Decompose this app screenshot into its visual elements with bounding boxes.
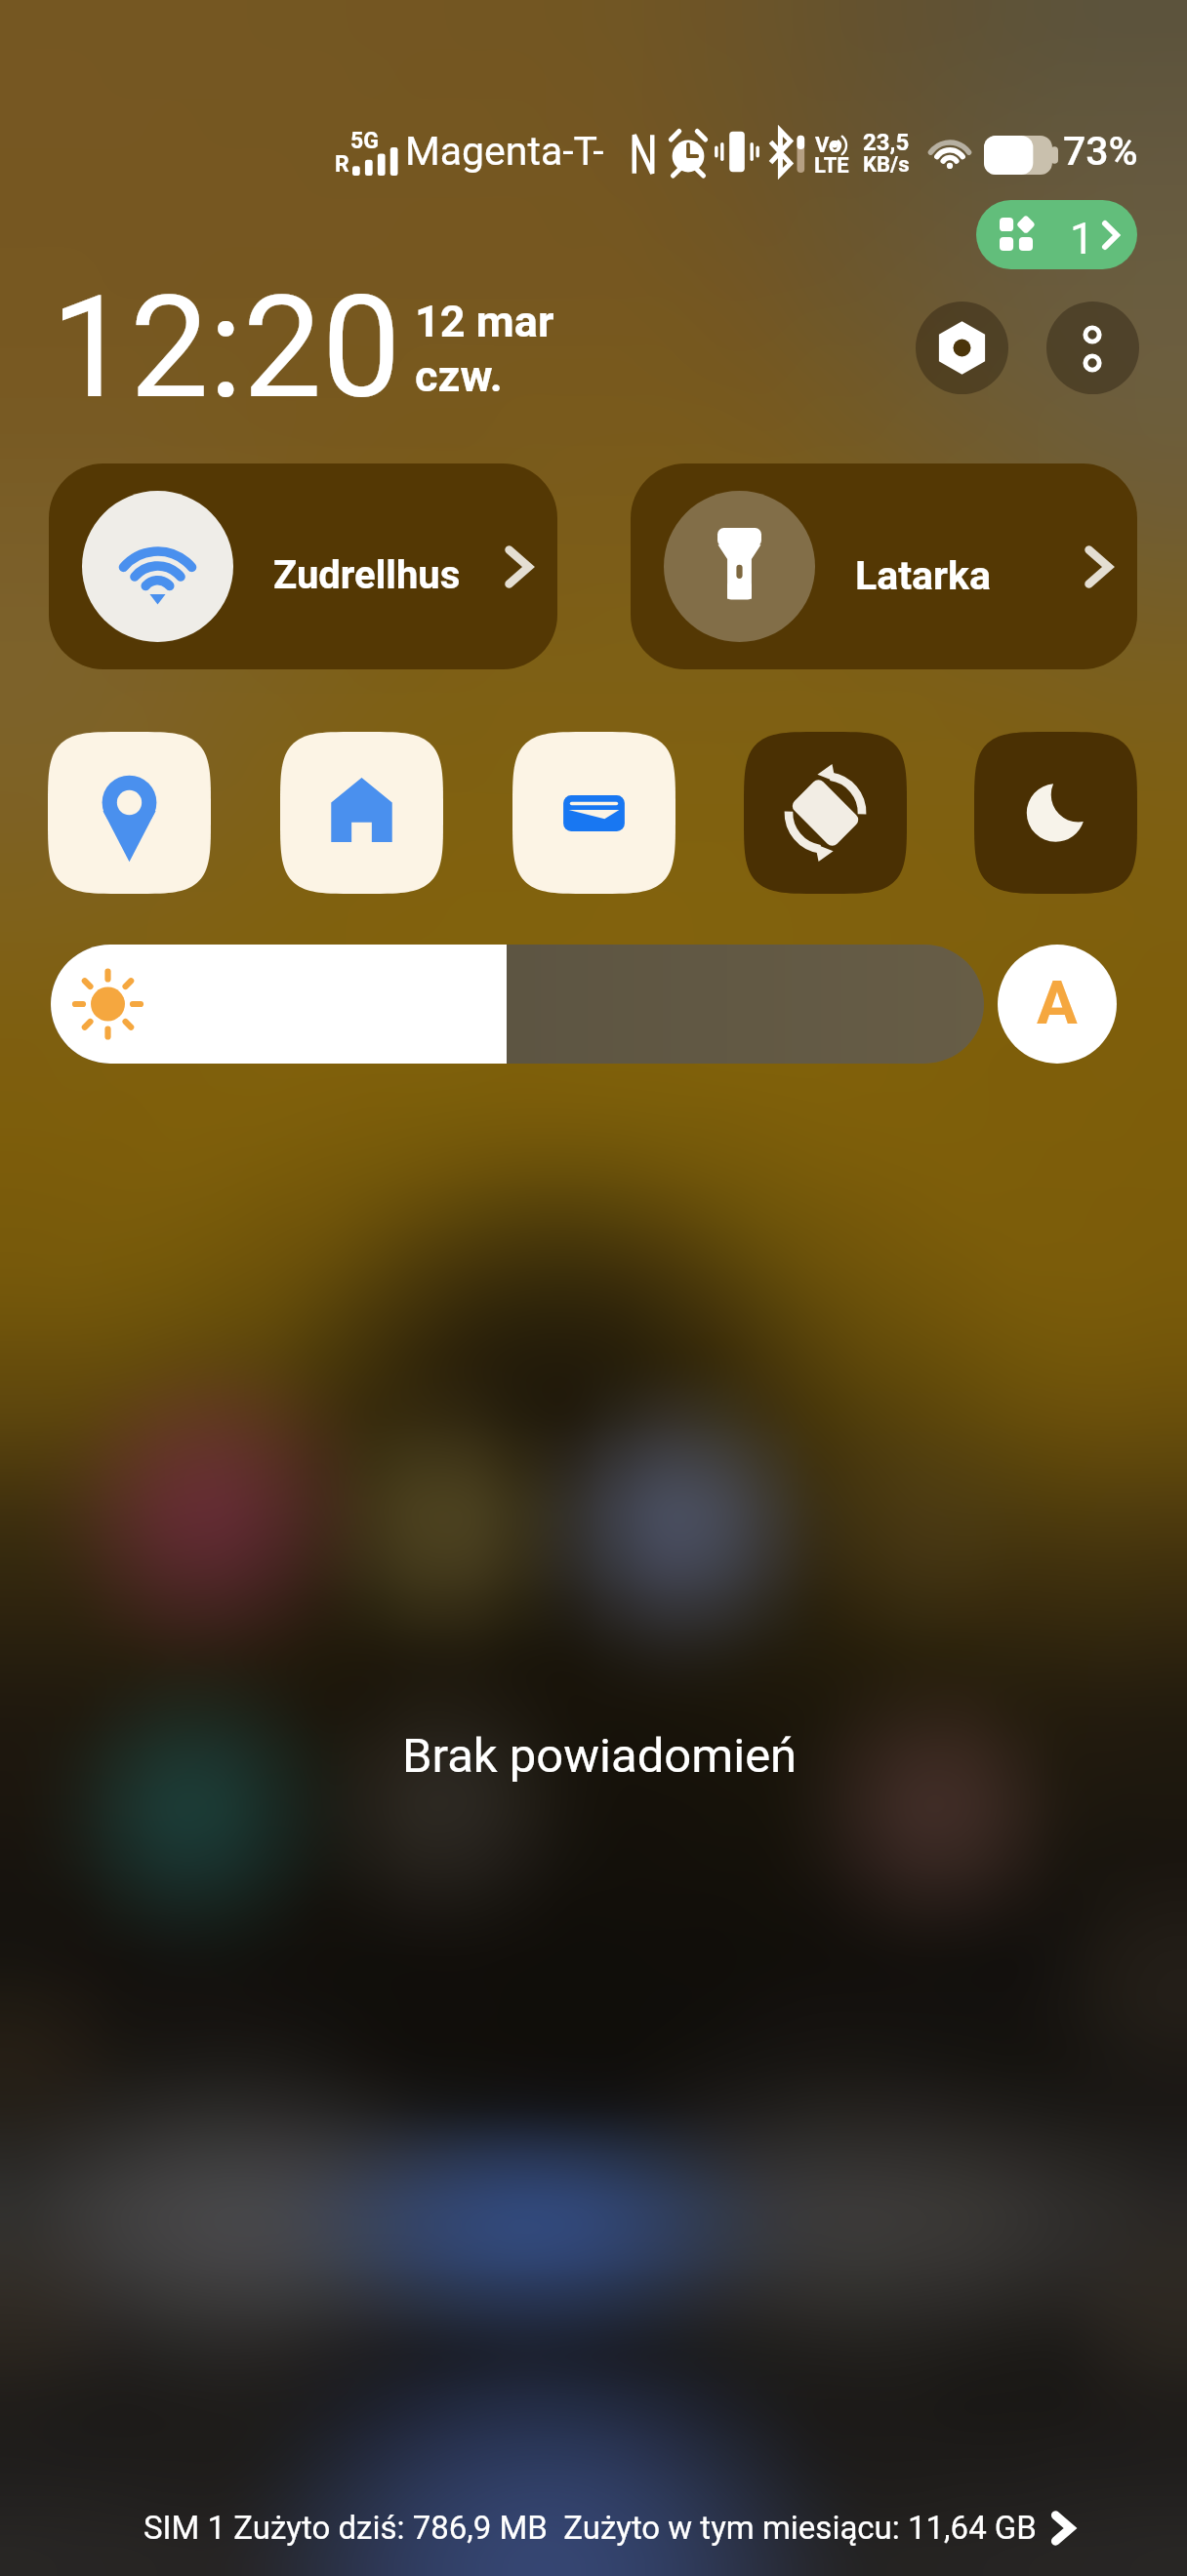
- staticText: 1: [1070, 214, 1094, 264]
- staticText: 12:20: [51, 265, 401, 430]
- staticText: 73%: [1063, 128, 1138, 175]
- staticText: Magenta-T-: [405, 128, 604, 175]
- button[interactable]: Dark mode: [974, 732, 1137, 894]
- button[interactable]: Edit quick settings: [976, 200, 1137, 269]
- button[interactable]: Wallet: [512, 732, 675, 894]
- button[interactable]: Auto rotate: [744, 732, 907, 894]
- staticText: Latarka: [855, 552, 991, 599]
- staticText: 23,5: [863, 129, 910, 156]
- staticText: czw.: [415, 350, 503, 402]
- button[interactable]: Settings: [916, 302, 1008, 394]
- button[interactable]: Zudrellhus: [49, 463, 557, 669]
- staticText: LTE: [814, 153, 849, 179]
- button[interactable]: More options: [1046, 302, 1139, 394]
- staticText: SIM 1 Zużyto dziś: 786,9 MB Zużyto w tym…: [143, 2509, 1037, 2547]
- staticText: Brak powiadomień: [402, 1728, 798, 1784]
- staticText: Vo: [815, 133, 841, 158]
- button[interactable]: Location: [48, 732, 211, 894]
- button[interactable]: Auto brightness: [998, 945, 1117, 1064]
- staticText: Zudrellhus: [273, 552, 461, 598]
- button[interactable]: Brightness: [51, 945, 984, 1064]
- button[interactable]: SIM 1 Zużyto dziś: 786,9 MB Zużyto w tym…: [143, 2509, 1073, 2547]
- staticText: R: [335, 151, 349, 178]
- staticText: A: [1037, 967, 1078, 1038]
- button[interactable]: Latarka: [631, 463, 1137, 669]
- staticText: 5G: [350, 128, 379, 154]
- staticText: 12 mar: [415, 296, 554, 347]
- button[interactable]: Home: [280, 732, 443, 894]
- staticText: KB/s: [863, 152, 910, 178]
